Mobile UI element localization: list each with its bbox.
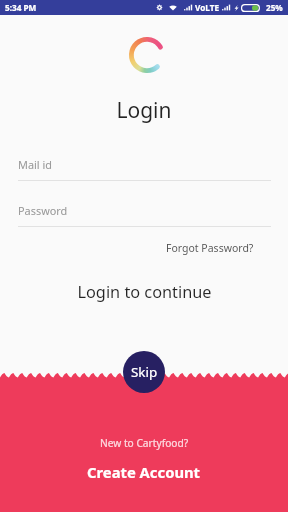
button[interactable]: Login to continue xyxy=(65,277,224,307)
other: Charging xyxy=(234,4,239,12)
staticText: Mail id xyxy=(18,157,52,172)
other: Mobile signal xyxy=(184,4,193,12)
button[interactable]: Forgot Password? xyxy=(162,237,258,259)
button[interactable]: Mail id xyxy=(18,157,271,181)
staticText: Login to continue xyxy=(77,281,212,303)
staticText: Password xyxy=(18,203,68,218)
other: Cartyfood logo xyxy=(129,37,165,73)
other: Mobile signal xyxy=(222,4,231,12)
staticText: New to Cartyfood? xyxy=(100,436,189,450)
staticText: Login xyxy=(0,96,288,125)
button[interactable]: Create Account xyxy=(75,459,213,485)
other: Wi-Fi xyxy=(169,4,177,11)
other: Settings xyxy=(156,4,163,11)
button[interactable]: Password xyxy=(18,203,271,227)
other: Battery 25 percent xyxy=(241,4,262,12)
staticText: VoLTE xyxy=(195,2,219,13)
staticText: Forgot Password? xyxy=(166,241,254,255)
staticText: Skip xyxy=(131,363,158,381)
staticText: Create Account xyxy=(87,462,201,482)
button[interactable]: Skip xyxy=(123,351,165,393)
staticText: 25% xyxy=(266,2,283,13)
staticText: 5:34 PM xyxy=(5,2,37,13)
